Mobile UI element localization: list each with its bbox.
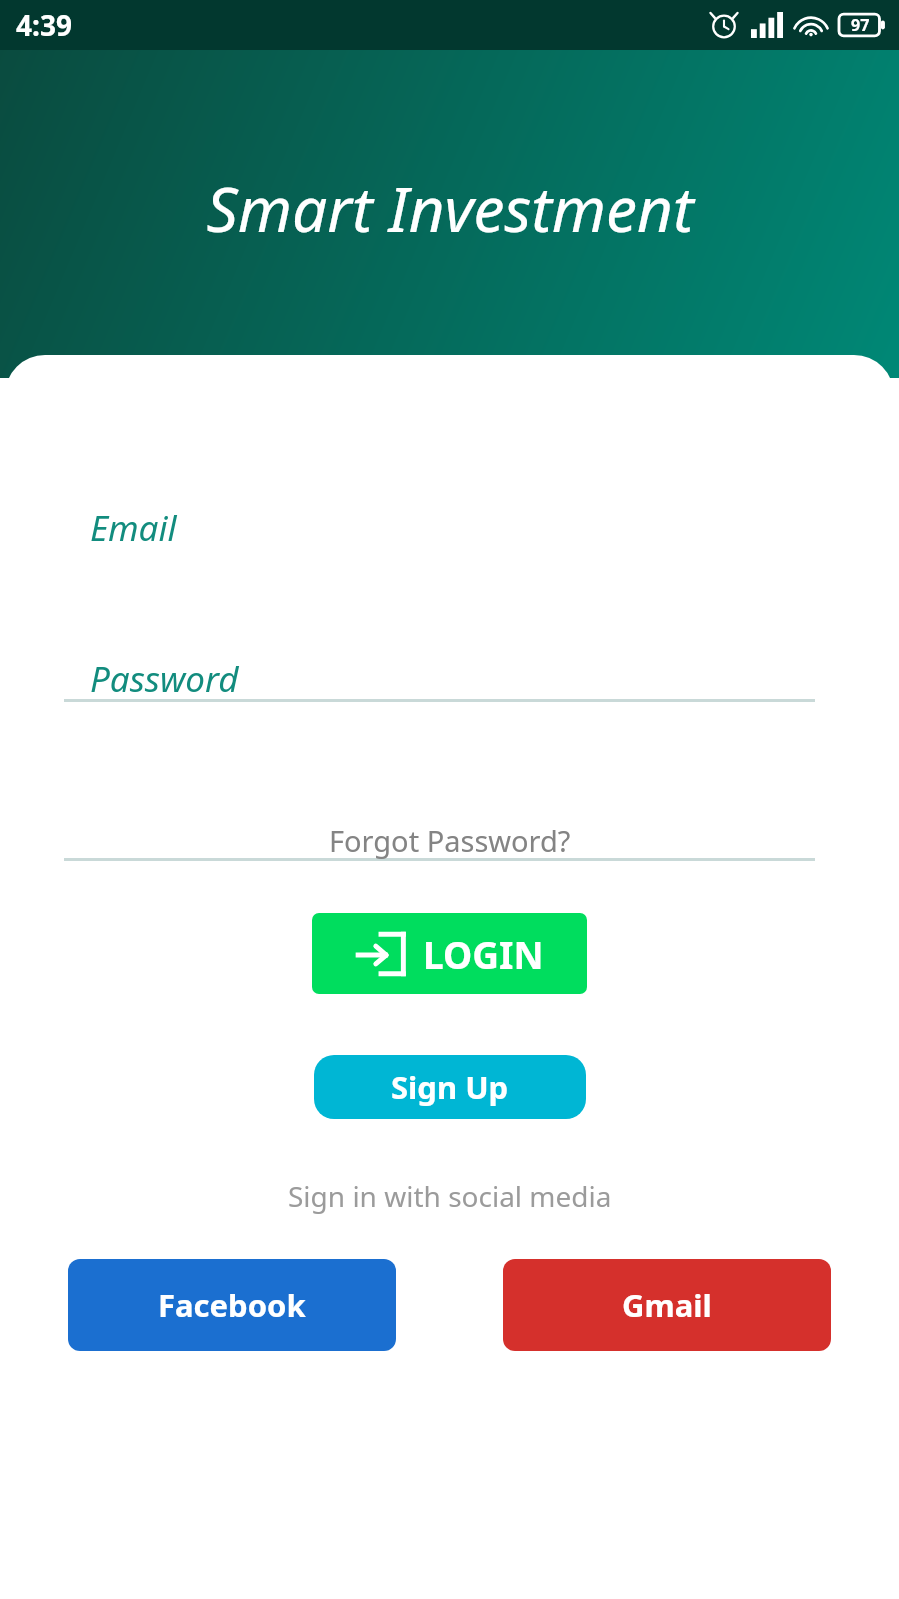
staticText: Facebook bbox=[158, 1284, 306, 1326]
staticText: Smart Investment bbox=[206, 166, 694, 250]
button[interactable]: Email bbox=[68, 448, 831, 607]
staticText: LOGIN bbox=[423, 929, 544, 979]
button[interactable]: Password bbox=[68, 607, 831, 750]
staticText: 4:39 bbox=[16, 6, 72, 44]
button[interactable]: Forgot Password? bbox=[313, 813, 587, 868]
staticText: Sign Up bbox=[391, 1066, 509, 1108]
button[interactable]: Gmail bbox=[503, 1259, 831, 1351]
staticText: 97 bbox=[851, 14, 870, 36]
staticText: Gmail bbox=[622, 1284, 712, 1326]
staticText: Email bbox=[90, 504, 177, 552]
button[interactable]: Facebook bbox=[68, 1259, 396, 1351]
staticText: Sign in with social media bbox=[288, 1177, 612, 1215]
button[interactable]: Sign Up bbox=[314, 1055, 586, 1119]
staticText: Password bbox=[90, 655, 239, 703]
staticText: Forgot Password? bbox=[329, 821, 571, 860]
button[interactable]: LOGIN bbox=[312, 913, 587, 994]
